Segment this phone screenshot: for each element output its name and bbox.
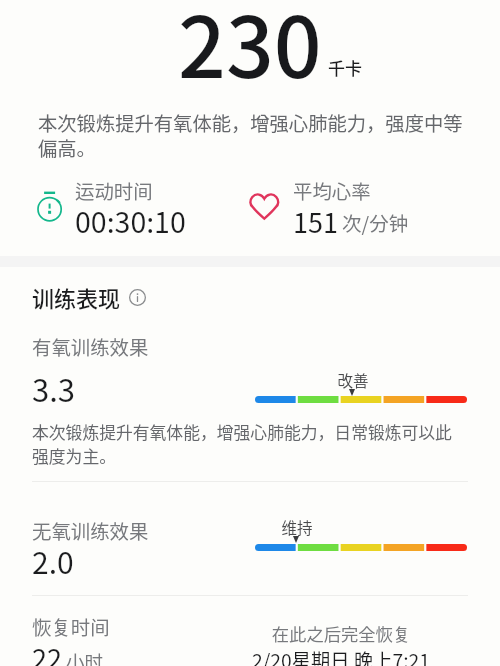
- staticText: 千卡: [328, 55, 362, 80]
- staticText: 2/20星期日 晚上7:21: [251, 646, 431, 666]
- staticText: 3.3: [32, 366, 76, 411]
- staticText: 维持: [257, 516, 337, 538]
- other: Exercise duration: [36, 190, 63, 221]
- staticText: 无氧训练效果: [32, 516, 149, 544]
- button[interactable]: 训练表现: [32, 281, 146, 313]
- staticText: 151: [293, 202, 338, 241]
- staticText: 训练表现: [32, 281, 121, 313]
- staticText: 22 小时: [32, 638, 104, 666]
- staticText: 230: [178, 0, 322, 103]
- button[interactable]: Average heart rate: [246, 180, 416, 236]
- staticText: 在此之后完全恢复: [251, 621, 431, 646]
- staticText: 平均心率: [293, 176, 371, 204]
- staticText: 运动时间: [75, 176, 153, 204]
- staticText: 本次锻炼提升有氧体能，增强心肺能力，日常锻炼可以此强度为主。: [32, 420, 468, 468]
- staticText: 恢复时间: [32, 612, 110, 640]
- other: Info: [129, 289, 146, 306]
- button[interactable]: Exercise duration: [30, 180, 190, 236]
- staticText: 00:30:10: [75, 200, 186, 241]
- staticText: 改善: [313, 369, 393, 391]
- staticText: 有氧训练效果: [32, 332, 149, 360]
- staticText: 2.0: [32, 539, 74, 582]
- staticText: 次/分钟: [342, 208, 409, 236]
- staticText: 本次锻炼提升有氧体能，增强心肺能力，强度中等偏高。: [38, 109, 469, 162]
- other: Average heart rate: [251, 194, 280, 221]
